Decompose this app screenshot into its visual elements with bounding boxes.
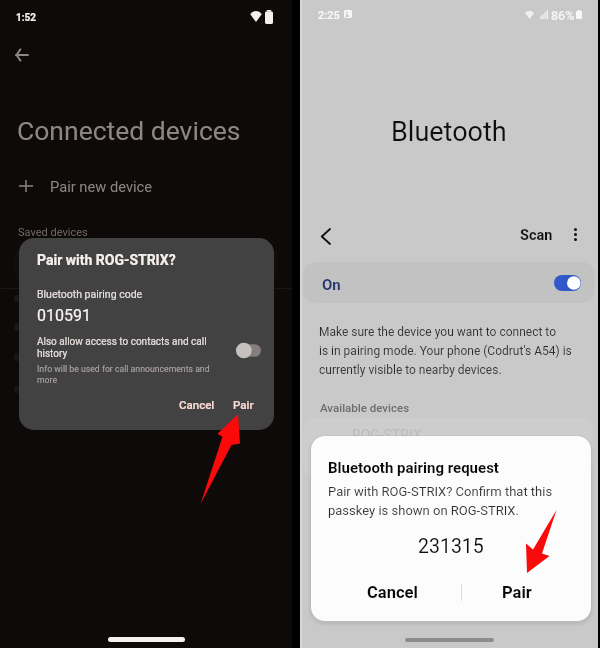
staticText: Connected devices [17,115,241,146]
staticText: Available devices [320,401,410,414]
button[interactable]: Cancel [325,572,460,612]
staticText: Also allow access to contacts and call h… [37,336,215,360]
button[interactable]: On [303,262,595,303]
staticText: Bluetooth pairing request [328,459,499,477]
button[interactable]: More options [563,222,587,246]
button[interactable]: Scan [516,222,557,248]
button[interactable]: Pair [462,572,571,612]
staticText: ROG-STRIX [352,427,422,443]
button[interactable]: Allow contacts and call history [222,333,274,367]
staticText: Pair [502,583,532,602]
button[interactable]: Pair [225,391,262,417]
button[interactable]: Pair new device [0,168,292,204]
button[interactable]: Back [2,36,40,74]
staticText: 231315 [418,535,484,558]
staticText: 2:25 [318,9,340,22]
staticText: 1:52 [16,12,37,24]
staticText: 010591 [37,306,91,325]
staticText: Make sure the device you want to connect… [319,325,591,377]
staticText: 86% [551,8,575,23]
staticText: Pair new device [50,178,153,195]
staticText: Pair with ROG-STRIX? [37,252,176,268]
staticText: Pair with ROG-STRIX? Confirm that this p… [328,484,560,518]
staticText: Info will be used for call announcements… [37,364,217,385]
staticText: Scan [520,227,553,244]
button[interactable]: Cancel [171,391,223,417]
button[interactable]: Back [308,219,342,253]
staticText: Bluetooth pairing code [37,288,143,300]
staticText: On [322,276,341,294]
staticText: Pair [233,398,254,411]
staticText: Bluetooth [391,116,507,148]
staticText: Cancel [179,398,215,411]
staticText: Saved devices [18,226,88,239]
staticText: Cancel [367,583,418,602]
